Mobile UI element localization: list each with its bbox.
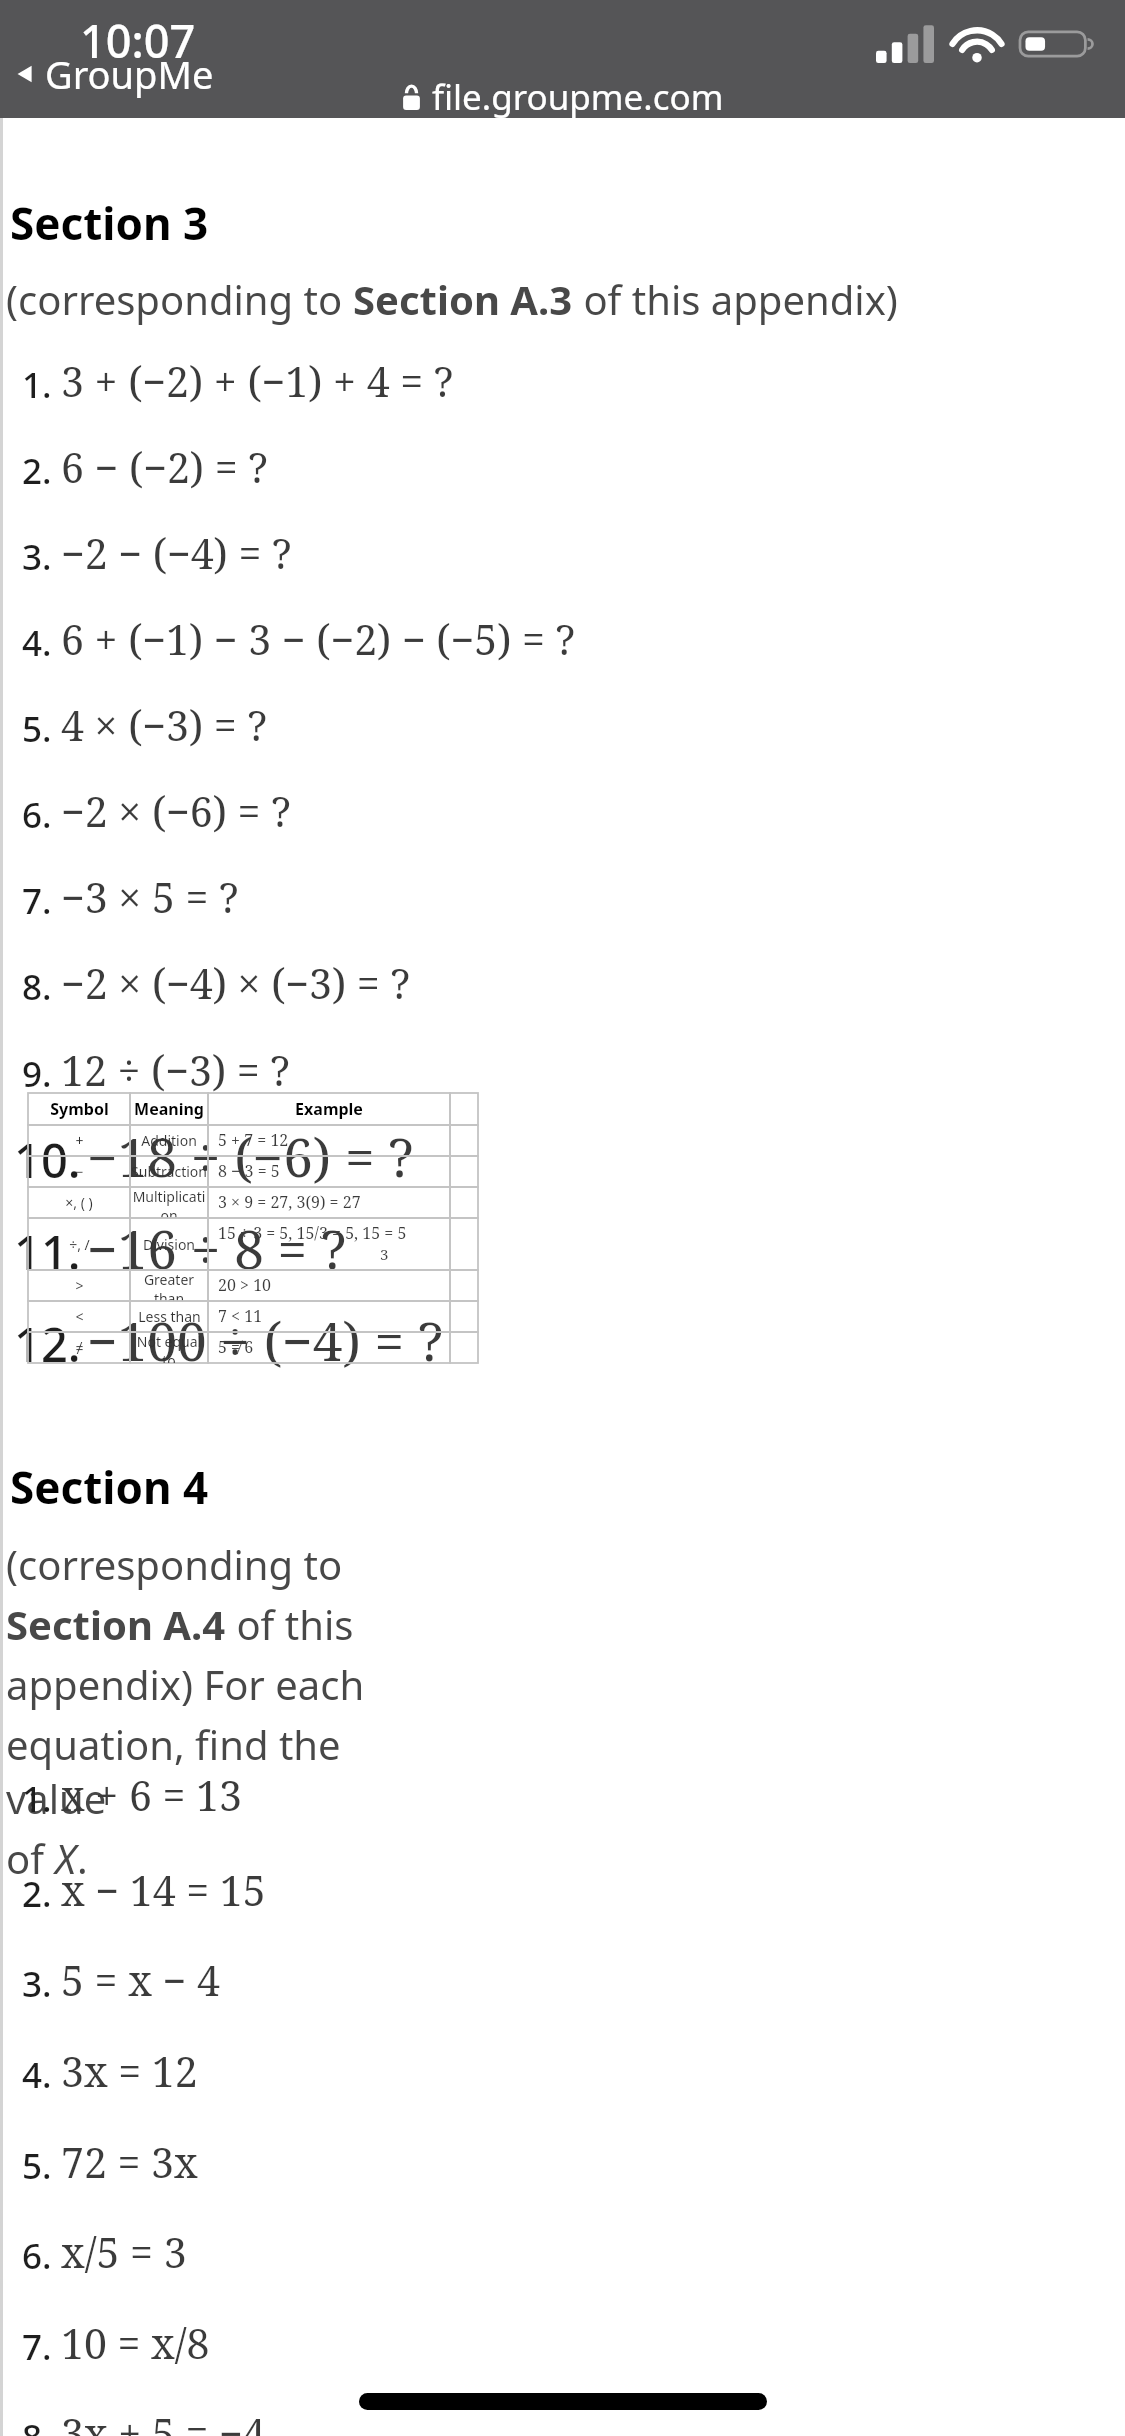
staticText: Section A.4	[6, 1597, 226, 1651]
staticText: 8 − 3 = 5	[218, 1160, 280, 1182]
button[interactable]: 7.	[22, 869, 249, 925]
staticText: −2 × (−6) = ?	[61, 783, 291, 839]
staticText: −16 ÷ 8 = ?	[87, 1212, 347, 1284]
staticText: 3.	[22, 533, 52, 581]
staticText: −2 − (−4) = ?	[61, 525, 292, 581]
other: Battery	[1020, 25, 1096, 63]
button[interactable]: 7.	[22, 2315, 220, 2371]
staticText: 12.	[14, 1312, 81, 1376]
staticText: ×, ( )	[65, 1193, 93, 1212]
button[interactable]: 3.	[22, 525, 302, 581]
button[interactable]: 6.	[22, 2224, 197, 2280]
staticText: (corresponding to	[6, 1537, 343, 1591]
staticText: 3 × 9 = 27, 3(9) = 27	[218, 1191, 361, 1213]
staticText: 5.	[22, 705, 52, 753]
staticText: Meaning	[134, 1098, 204, 1120]
button[interactable]: file.groupme.com	[391, 70, 734, 124]
other: Cellular signal	[876, 25, 934, 63]
staticText: .	[77, 1831, 88, 1885]
button[interactable]: 12.	[14, 1304, 454, 1376]
staticText: 10 = x/8	[61, 2315, 210, 2371]
staticText: 72 = 3x	[61, 2134, 198, 2190]
button[interactable]: 8.	[22, 955, 420, 1011]
staticText: x/5 = 3	[61, 2224, 187, 2280]
staticText: 8.	[22, 963, 52, 1011]
staticText: 7.	[22, 2323, 52, 2371]
staticText: −	[75, 1162, 84, 1181]
staticText: 3 + (−2) + (−1) + 4 = ?	[61, 353, 454, 409]
staticText: 2.	[22, 447, 52, 495]
staticText: 3x + 5 = −4	[61, 2405, 266, 2436]
staticText: equation, find the value	[6, 1717, 406, 1825]
staticText: −100 ÷ (−4) = ?	[87, 1304, 444, 1376]
staticText: ÷, /	[69, 1235, 90, 1254]
staticText: Greater than	[130, 1270, 208, 1301]
staticText: 8.	[22, 2413, 52, 2436]
staticText: 4.	[22, 619, 52, 667]
staticText: 5 ≠ 6	[218, 1336, 254, 1358]
staticText: 3	[380, 1244, 389, 1264]
staticText: 11.	[14, 1220, 81, 1284]
button[interactable]: 10.	[14, 1120, 424, 1192]
staticText: x − 14 = 15	[61, 1862, 266, 1918]
staticText: GroupMe	[45, 48, 214, 100]
staticText: Addition	[141, 1131, 197, 1150]
button[interactable]: 11.	[14, 1212, 357, 1284]
staticText: x + 6 = 13	[61, 1767, 242, 1823]
staticText: Division	[143, 1235, 195, 1254]
button[interactable]: 5.	[22, 697, 277, 753]
staticText: −18 ÷ (−6) = ?	[87, 1120, 414, 1192]
staticText: <	[75, 1307, 84, 1326]
staticText: 10:07	[80, 10, 196, 71]
button[interactable]: 3.	[22, 1952, 230, 2008]
staticText: Section A.3	[353, 272, 573, 326]
staticText: Not equal to	[130, 1332, 208, 1363]
staticText: 7 < 11	[218, 1305, 263, 1327]
staticText: of	[6, 1831, 55, 1885]
staticText: >	[75, 1276, 84, 1295]
staticText: X	[55, 1831, 77, 1885]
staticText: of this appendix)	[573, 272, 898, 326]
staticText: 3x = 12	[61, 2043, 198, 2099]
staticText: 4 × (−3) = ?	[61, 697, 267, 753]
button[interactable]: 9.	[22, 1042, 300, 1098]
staticText: file.groupme.com	[432, 73, 724, 121]
button[interactable]: 1.	[22, 1767, 252, 1823]
staticText: Section 3	[10, 193, 209, 253]
button[interactable]: 1.	[22, 353, 464, 409]
staticText: appendix) For each	[6, 1657, 365, 1711]
staticText: 12 ÷ (−3) = ?	[61, 1042, 290, 1098]
staticText: Subtraction	[131, 1162, 207, 1181]
staticText: 20 > 10	[218, 1274, 272, 1296]
staticText: 15 ÷ 3 = 5, 15/3 = 5, 15 = 5	[218, 1222, 407, 1244]
button[interactable]: 4.	[22, 611, 586, 667]
staticText: 5 + 7 = 12	[218, 1129, 289, 1151]
staticText: Example	[295, 1098, 363, 1120]
staticText: +	[75, 1131, 84, 1150]
staticText: 6 − (−2) = ?	[61, 439, 268, 495]
staticText: Less than	[138, 1307, 201, 1326]
staticText: 4.	[22, 2051, 52, 2099]
staticText: 3.	[22, 1960, 52, 2008]
staticText: Section 4	[10, 1457, 209, 1517]
button[interactable]: 8.	[22, 2405, 276, 2436]
staticText: Symbol	[50, 1098, 109, 1120]
button[interactable]: 6.	[22, 783, 301, 839]
staticText: 5 = x − 4	[61, 1952, 220, 2008]
staticText: 6.	[22, 2232, 52, 2280]
button[interactable]: 5.	[22, 2134, 208, 2190]
staticText: 1.	[22, 1775, 52, 1823]
button[interactable]: 4.	[22, 2043, 208, 2099]
staticText: −2 × (−4) × (−3) = ?	[61, 955, 410, 1011]
button[interactable]: Back to GroupMe	[8, 44, 220, 104]
staticText: 10.	[14, 1128, 81, 1192]
staticText: 5.	[22, 2142, 52, 2190]
staticText: 6.	[22, 791, 52, 839]
other: Wi-Fi	[952, 25, 1002, 63]
staticText: 6 + (−1) − 3 − (−2) − (−5) = ?	[61, 611, 576, 667]
staticText: 1.	[22, 361, 52, 409]
staticText: Multiplication	[130, 1187, 208, 1218]
button[interactable]: 2.	[22, 1862, 276, 1918]
button[interactable]: 2.	[22, 439, 278, 495]
staticText: 2.	[22, 1870, 52, 1918]
